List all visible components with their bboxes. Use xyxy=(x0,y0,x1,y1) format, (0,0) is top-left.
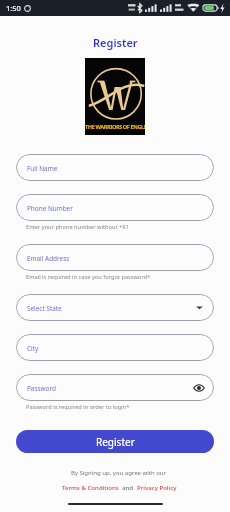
staticText: 1:50 xyxy=(6,3,21,13)
staticText: Password xyxy=(27,384,56,393)
button[interactable]: Register xyxy=(16,430,214,453)
button[interactable]: Show password xyxy=(193,382,205,394)
button[interactable]: Privacy Policy xyxy=(137,483,177,491)
staticText: By Signing up, you agree with our xyxy=(71,469,167,477)
button[interactable]: Open state dropdown xyxy=(195,303,204,312)
button[interactable]: Email Address xyxy=(16,244,214,271)
staticText: Register xyxy=(96,435,135,449)
staticText: Password is required in order to login* xyxy=(26,403,130,411)
staticText: and xyxy=(119,483,137,491)
staticText: Register xyxy=(93,35,138,50)
button[interactable]: Password xyxy=(16,374,214,401)
staticText: Terms & Conditions xyxy=(62,483,119,491)
button[interactable]: Terms & Conditions xyxy=(62,483,119,491)
staticText: Enter your phone number without +91 xyxy=(26,223,129,231)
staticText: Select State xyxy=(27,304,62,313)
staticText: Full Name xyxy=(27,164,58,173)
button[interactable]: Full Name xyxy=(16,154,214,181)
staticText: Privacy Policy xyxy=(137,483,177,491)
staticText: City xyxy=(27,344,39,353)
staticText: THE WARRIORS OF ENGLISH xyxy=(85,123,145,131)
staticText: Email is required in case you forgot pas… xyxy=(26,273,151,281)
button[interactable]: Select State xyxy=(16,294,214,321)
staticText: Email Address xyxy=(27,254,70,263)
staticText: Phone Number xyxy=(27,204,73,213)
button[interactable]: City xyxy=(16,334,214,361)
button[interactable]: Phone Number xyxy=(16,194,214,221)
